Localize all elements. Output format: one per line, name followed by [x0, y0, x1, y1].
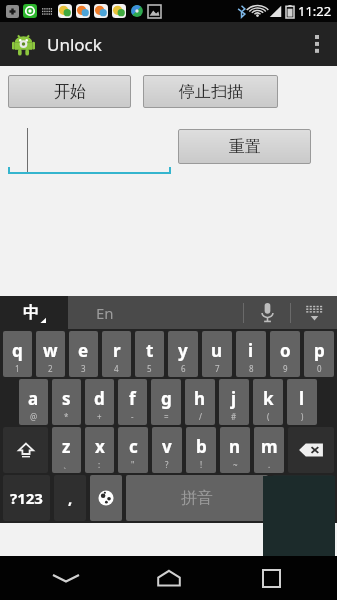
button[interactable]: d — [85, 379, 114, 425]
button[interactable]: 拼音 — [126, 475, 268, 521]
button[interactable]: s — [52, 379, 81, 425]
staticText: c — [129, 435, 138, 458]
staticText: w — [43, 339, 58, 362]
staticText: v — [162, 435, 172, 458]
button[interactable]: e — [69, 331, 98, 377]
staticText: b — [196, 435, 207, 458]
staticText: q — [12, 339, 23, 362]
staticText: 、 — [63, 460, 71, 470]
staticText: ) — [301, 411, 304, 422]
staticText: , — [68, 488, 73, 508]
staticText: 开始 — [54, 82, 86, 102]
staticText: z — [62, 435, 71, 458]
staticText: 2 — [48, 363, 53, 374]
staticText: ! — [200, 459, 203, 470]
staticText: f — [129, 387, 136, 410]
staticText: 拼音 — [181, 488, 213, 508]
staticText: ~ — [233, 459, 238, 470]
staticText: 7 — [215, 363, 220, 374]
button[interactable]: p — [304, 331, 334, 377]
staticText: Unlock — [47, 33, 102, 56]
staticText: o — [280, 339, 291, 362]
staticText: 1 — [15, 363, 20, 374]
button[interactable]: Recent apps — [235, 556, 307, 600]
staticText: p — [314, 339, 325, 362]
staticText: ( — [267, 411, 270, 422]
button[interactable]: c — [118, 427, 148, 473]
staticText: # — [231, 411, 237, 422]
staticText: 5 — [147, 363, 152, 374]
button[interactable]: m — [254, 427, 284, 473]
button[interactable]: h — [185, 379, 215, 425]
button[interactable]: v — [152, 427, 182, 473]
button[interactable]: z — [52, 427, 81, 473]
staticText: k — [263, 387, 274, 410]
staticText: 8 — [249, 363, 254, 374]
staticText: 11:22 — [298, 2, 332, 20]
button[interactable]: f — [118, 379, 147, 425]
staticText: : — [98, 459, 101, 470]
staticText: 4 — [114, 363, 119, 374]
staticText: 0 — [317, 363, 322, 374]
staticText: + — [97, 411, 102, 422]
staticText: r — [113, 339, 121, 362]
button[interactable]: q — [3, 331, 32, 377]
staticText: 中 — [23, 303, 39, 323]
staticText: - — [131, 411, 134, 422]
staticText: x — [95, 435, 105, 458]
button[interactable]: Backspace — [288, 427, 334, 473]
button[interactable]: , — [54, 475, 86, 521]
button[interactable]: Hide keyboard — [291, 296, 337, 329]
staticText: 6 — [181, 363, 186, 374]
button[interactable]: t — [135, 331, 164, 377]
button[interactable]: w — [36, 331, 65, 377]
button[interactable]: b — [186, 427, 216, 473]
button[interactable]: i — [236, 331, 266, 377]
button[interactable]: Voice input — [244, 296, 290, 329]
button[interactable]: 停止扫描 — [143, 75, 278, 108]
staticText: g — [161, 387, 172, 410]
staticText: s — [62, 387, 71, 410]
staticText: 停止扫描 — [179, 82, 243, 102]
staticText: j — [231, 387, 237, 410]
button[interactable]: En — [68, 296, 243, 329]
staticText: a — [28, 387, 39, 410]
button[interactable]: 开始 — [8, 75, 131, 108]
button[interactable]: Change keyboard language — [90, 475, 122, 521]
button[interactable]: k — [253, 379, 283, 425]
staticText: / — [199, 411, 202, 422]
staticText: 重置 — [229, 137, 261, 157]
staticText: y — [178, 339, 188, 362]
button[interactable]: x — [85, 427, 114, 473]
button[interactable]: 中 — [0, 296, 68, 329]
staticText: e — [78, 339, 89, 362]
button[interactable]: Shift — [3, 427, 48, 473]
button[interactable]: y — [168, 331, 198, 377]
button[interactable]: l — [287, 379, 317, 425]
staticText: u — [211, 339, 223, 362]
staticText: = — [164, 411, 169, 422]
button[interactable]: 重置 — [178, 129, 311, 164]
button[interactable]: n — [220, 427, 250, 473]
button[interactable]: a — [19, 379, 48, 425]
staticText: i — [248, 339, 254, 362]
staticText: . — [268, 459, 271, 470]
button[interactable]: r — [102, 331, 131, 377]
staticText: d — [94, 387, 105, 410]
staticText: n — [229, 435, 241, 458]
staticText: 3 — [81, 363, 86, 374]
staticText: l — [299, 387, 305, 410]
button[interactable]: j — [219, 379, 249, 425]
staticText: h — [194, 387, 206, 410]
button[interactable]: More options — [297, 22, 337, 66]
button[interactable]: g — [151, 379, 181, 425]
button[interactable]: Hide keyboard — [30, 556, 102, 600]
button[interactable]: o — [270, 331, 300, 377]
staticText: * — [64, 411, 69, 422]
button[interactable]: ?123 — [3, 475, 50, 521]
staticText: t — [146, 339, 154, 362]
button[interactable]: Home — [133, 556, 205, 600]
button[interactable]: u — [202, 331, 232, 377]
staticText: m — [261, 435, 278, 458]
